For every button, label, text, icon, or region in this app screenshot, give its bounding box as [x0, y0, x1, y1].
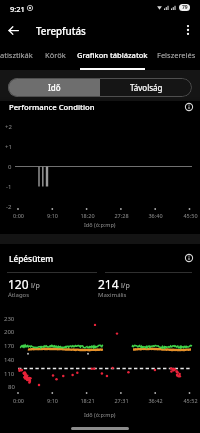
staticText: 45:52: [183, 397, 198, 404]
staticText: l/p: [121, 281, 130, 291]
staticText: 18:20: [80, 212, 95, 219]
button[interactable]: Idő: [8, 78, 100, 97]
button[interactable]: Távolság: [100, 78, 192, 97]
staticText: Idő (ó:p:mp): [84, 221, 116, 228]
button[interactable]: atisztikák: [0, 42, 36, 68]
staticText: Felszerelés: [157, 50, 196, 60]
staticText: 9:21: [10, 4, 25, 14]
staticText: Idő (ó:p:mp): [84, 411, 116, 418]
staticText: 9:10: [47, 212, 58, 219]
button[interactable]: Grafikon táblázatok: [74, 42, 150, 68]
staticText: Grafikon táblázatok: [77, 50, 148, 60]
staticText: Idő: [48, 82, 61, 93]
staticText: 79: [182, 4, 188, 11]
staticText: 27:31: [114, 397, 129, 404]
button[interactable]: More options: [177, 19, 199, 41]
staticText: 0:00: [13, 212, 24, 219]
staticText: 9:10: [47, 397, 58, 404]
staticText: 36:42: [148, 397, 163, 404]
staticText: 200: [4, 328, 15, 336]
staticText: atisztikák: [0, 50, 33, 60]
staticText: Terepfutás: [36, 25, 86, 38]
staticText: 45:50: [183, 212, 198, 219]
staticText: +2: [5, 123, 12, 131]
staticText: Átlagos: [8, 291, 30, 299]
staticText: 18:21: [80, 397, 95, 404]
button[interactable]: Back: [3, 20, 24, 41]
button[interactable]: Körök: [42, 42, 68, 68]
staticText: 80: [8, 383, 15, 391]
staticText: 110: [4, 370, 15, 378]
staticText: 140: [4, 356, 15, 364]
staticText: l/p: [31, 281, 40, 291]
staticText: 230: [4, 315, 15, 323]
staticText: 0: [8, 163, 12, 171]
staticText: 170: [4, 342, 15, 350]
staticText: Körök: [45, 50, 66, 60]
staticText: -2: [6, 203, 12, 211]
staticText: 120: [8, 276, 29, 292]
staticText: Performance Condition: [9, 102, 95, 112]
staticText: 27:28: [114, 212, 129, 219]
staticText: -1: [6, 183, 12, 191]
staticText: Lépésütem: [9, 253, 54, 264]
button[interactable]: Info: [182, 251, 196, 265]
staticText: Távolság: [130, 82, 163, 93]
staticText: 0:00: [13, 397, 24, 404]
staticText: Maximális: [98, 291, 127, 299]
button[interactable]: Info: [182, 101, 196, 112]
staticText: 214: [98, 276, 119, 292]
button[interactable]: Felszerelés: [152, 42, 200, 68]
staticText: +1: [5, 143, 12, 151]
staticText: 36:40: [148, 212, 163, 219]
